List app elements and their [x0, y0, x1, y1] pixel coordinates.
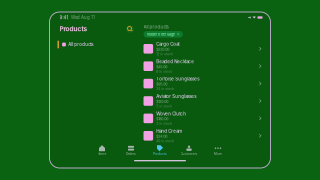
staticText: $45.00 — [156, 65, 167, 69]
staticText: Cargo Coat — [156, 41, 179, 47]
staticText: Woven Clutch — [156, 111, 186, 116]
staticText: ✕ — [177, 32, 180, 36]
button[interactable]: Orders — [116, 145, 145, 156]
button[interactable]: Hand Cream — [143, 127, 261, 144]
staticText: 5 in stock — [156, 104, 172, 108]
staticText: Home — [97, 152, 106, 156]
button[interactable]: modern heritage — [143, 31, 183, 38]
staticText: Aviator Sunglasses — [156, 94, 196, 99]
button[interactable]: Customers — [174, 145, 203, 156]
button[interactable]: More — [203, 145, 232, 156]
staticText: Customers — [180, 152, 197, 156]
staticText: All products — [143, 24, 168, 30]
button[interactable]: Home — [87, 145, 116, 156]
staticText: Beaded Necklace — [156, 59, 194, 64]
staticText: Orders — [126, 152, 136, 156]
button[interactable]: Aviator Sunglasses — [143, 92, 261, 110]
button[interactable]: Tortoise Sunglasses — [143, 75, 261, 92]
button[interactable]: Beaded Necklace — [143, 57, 261, 75]
button[interactable]: Cargo Coat — [143, 40, 261, 57]
staticText: $95.00 — [156, 82, 167, 86]
staticText: $180.00 — [156, 117, 168, 121]
staticText: $220.00 — [156, 47, 169, 52]
staticText: All products — [68, 42, 93, 47]
staticText: 12 in stock — [156, 52, 173, 56]
staticText: 40 in stock — [156, 139, 174, 143]
button[interactable]: Products — [145, 145, 174, 156]
staticText: $120.00 — [156, 99, 168, 104]
staticText: $24.00 — [156, 134, 167, 139]
staticText: Products — [59, 25, 87, 33]
button[interactable]: Woven Clutch — [143, 110, 261, 127]
staticText: Tortoise Sunglasses — [156, 76, 199, 82]
staticText: 3 in stock — [156, 122, 172, 126]
staticText: modern heritage — [147, 32, 175, 37]
staticText: Products — [153, 152, 167, 156]
staticText: Wed Aug 11 — [71, 15, 95, 20]
staticText: 24 in stock — [156, 87, 174, 91]
staticText: More — [214, 152, 222, 156]
staticText: Hand Cream — [156, 128, 182, 134]
staticText: 9:41 — [59, 15, 68, 20]
button[interactable]: Search products — [125, 24, 134, 33]
button[interactable]: All products — [49, 40, 141, 49]
staticText: 8 in stock — [156, 69, 172, 73]
